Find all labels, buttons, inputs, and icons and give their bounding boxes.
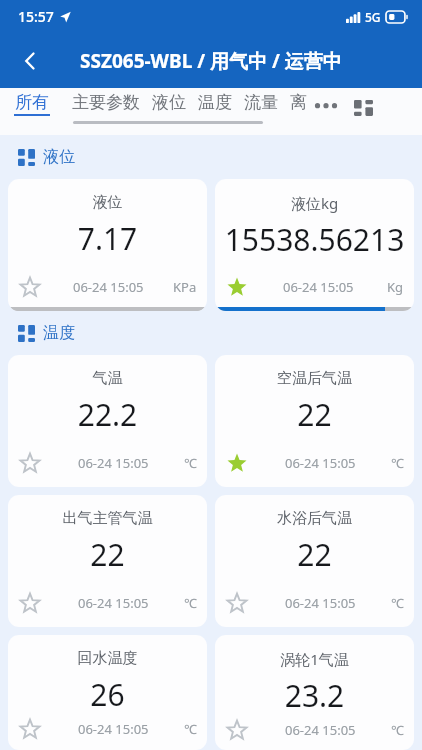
staticText: 水浴后气温 [215, 509, 414, 528]
button[interactable]: Unfavorite [223, 273, 251, 301]
button[interactable]: Favorite [223, 589, 251, 617]
button[interactable]: 所有 [14, 92, 50, 116]
staticText: 06-24 15:05 [78, 594, 149, 612]
staticText: 7.17 [10, 218, 205, 259]
staticText: 22 [10, 534, 205, 575]
staticText: 22.2 [10, 394, 205, 435]
staticText: 15:57 [18, 7, 54, 26]
staticText: 06-24 15:05 [285, 454, 356, 472]
button[interactable]: Favorite [16, 715, 44, 743]
button[interactable]: 回水温度 [8, 635, 207, 750]
button[interactable]: 出气主管气温 [8, 495, 207, 627]
staticText: ℃ [184, 454, 197, 472]
staticText: 所有 [15, 92, 49, 113]
staticText: Kg [387, 278, 404, 296]
button[interactable]: Favorite [16, 589, 44, 617]
button[interactable]: Favorite [16, 273, 44, 301]
button[interactable]: 流量 [244, 92, 278, 113]
staticText: ℃ [184, 594, 197, 612]
staticText: 回水温度 [8, 649, 207, 668]
staticText: 06-24 15:05 [283, 278, 354, 296]
staticText: 06-24 15:05 [285, 721, 356, 739]
staticText: 涡轮1气温 [215, 649, 414, 669]
staticText: 空温后气温 [215, 369, 414, 388]
staticText: 温度 [43, 323, 75, 343]
staticText: 06-24 15:05 [73, 278, 144, 296]
staticText: 液位 [8, 193, 207, 212]
staticText: 22 [217, 534, 412, 575]
staticText: ℃ [391, 594, 404, 612]
staticText: 液位 [43, 147, 75, 167]
staticText: 液位kg [215, 193, 414, 213]
button[interactable]: Unfavorite [223, 449, 251, 477]
button[interactable]: 空温后气温 [215, 355, 414, 487]
staticText: 06-24 15:05 [78, 454, 149, 472]
button[interactable]: 温度 [198, 92, 232, 113]
staticText: ℃ [391, 454, 404, 472]
staticText: ℃ [391, 721, 404, 739]
button[interactable]: 液位 [8, 179, 207, 311]
staticText: 5G [365, 9, 381, 25]
button[interactable]: Favorite [16, 449, 44, 477]
staticText: 26 [10, 674, 205, 715]
button[interactable]: 液位kg [215, 179, 414, 311]
button[interactable]: 离 [290, 92, 307, 113]
staticText: 15538.562131 [217, 219, 412, 260]
staticText: ℃ [184, 720, 197, 738]
button[interactable]: 水浴后气温 [215, 495, 414, 627]
staticText: 22 [217, 394, 412, 435]
button[interactable]: 主要参数 [72, 92, 140, 113]
staticText: KPa [173, 278, 197, 296]
button[interactable]: 气温 [8, 355, 207, 487]
staticText: 23.2 [217, 675, 412, 716]
button[interactable]: More tabs [309, 92, 343, 114]
staticText: 出气主管气温 [8, 509, 207, 528]
staticText: 气温 [8, 369, 207, 388]
staticText: 06-24 15:05 [285, 594, 356, 612]
button[interactable]: Layout [346, 92, 380, 126]
button[interactable]: Favorite [223, 716, 251, 744]
button[interactable]: 液位 [152, 92, 186, 113]
button[interactable]: Back [8, 39, 52, 83]
staticText: 06-24 15:05 [78, 720, 149, 738]
staticText: SSZ065-WBL / 用气中 / 运营中 [80, 48, 342, 74]
button[interactable]: 涡轮1气温 [215, 635, 414, 750]
